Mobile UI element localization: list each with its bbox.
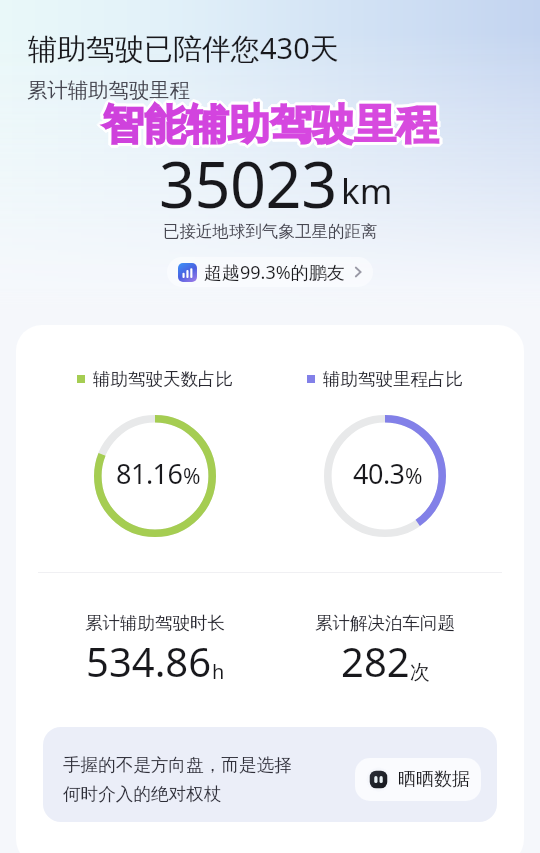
staticText: 辅助驾驶天数占比 xyxy=(93,368,233,390)
staticText: % xyxy=(183,462,201,491)
staticText: 智能辅助驾驶里程 xyxy=(102,96,438,149)
staticText: 晒晒数据 xyxy=(398,768,470,791)
staticText: 智能辅助驾驶里程 xyxy=(104,100,440,153)
staticText: km xyxy=(341,167,393,215)
staticText: 40.3 xyxy=(353,455,405,492)
staticText: 智能辅助驾驶里程 xyxy=(103,101,439,154)
staticText: 81.16 xyxy=(116,455,183,492)
staticText: 智能辅助驾驶里程 xyxy=(105,99,441,152)
staticText: 智能辅助驾驶里程 xyxy=(100,100,436,153)
staticText: 累计辅助驾驶里程 xyxy=(27,77,191,103)
button[interactable]: 超越99.3%的鹏友 xyxy=(167,257,373,287)
staticText: 智能辅助驾驶里程 xyxy=(104,98,440,151)
staticText: 智能辅助驾驶里程 xyxy=(101,97,437,150)
staticText: % xyxy=(405,462,423,491)
staticText: 次 xyxy=(410,660,430,685)
staticText: 超越99.3%的鹏友 xyxy=(204,260,345,285)
staticText: 已接近地球到气象卫星的距离 xyxy=(163,221,378,242)
staticText: 35023 xyxy=(159,141,337,227)
staticText: 累计辅助驾驶时长 xyxy=(85,612,225,634)
staticText: 累计解决泊车问题 xyxy=(315,612,455,634)
staticText: 辅助驾驶已陪伴您430天 xyxy=(28,28,339,68)
staticText: 智能辅助驾驶里程 xyxy=(100,98,436,151)
staticText: 智能辅助驾驶里程 xyxy=(102,102,438,155)
staticText: 智能辅助驾驶里程 xyxy=(103,97,439,150)
staticText: 智能辅助驾驶里程 xyxy=(101,101,437,154)
staticText: 智能辅助驾驶里程 xyxy=(102,99,438,152)
staticText: 智能辅助驾驶里程 xyxy=(99,99,435,152)
staticText: 534.86 xyxy=(86,634,212,688)
staticText: h xyxy=(212,658,225,685)
staticText: 282 xyxy=(341,634,410,688)
staticText: 手握的不是方向盘，而是选择 xyxy=(63,754,292,776)
staticText: 辅助驾驶里程占比 xyxy=(323,368,463,390)
staticText: 何时介入的绝对权杖 xyxy=(63,783,222,805)
button[interactable]: 晒晒数据 xyxy=(355,758,481,801)
